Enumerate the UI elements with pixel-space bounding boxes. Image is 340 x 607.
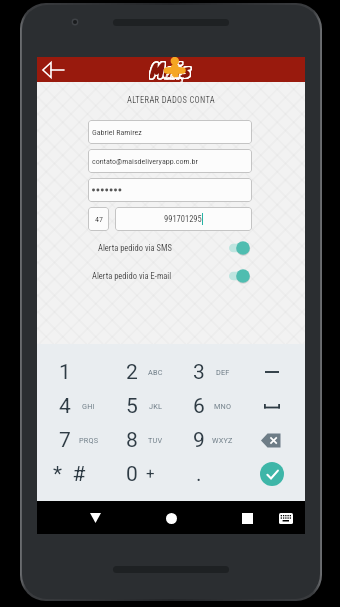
staticText: 0 (126, 462, 138, 487)
button[interactable]: 9 (171, 423, 238, 457)
button[interactable]: 5 (104, 389, 171, 423)
staticText: Mais (150, 57, 192, 79)
staticText: 991701295 (164, 214, 202, 224)
staticText: contato@maisdeliveryapp.com.br (92, 157, 198, 166)
button[interactable]: Traço (238, 355, 305, 389)
staticText: 6 (193, 394, 205, 419)
staticText: GHI (82, 402, 95, 411)
staticText: 4 (59, 394, 71, 419)
staticText: Mais (149, 57, 191, 79)
staticText: 5 (126, 394, 138, 419)
staticText: * # (53, 462, 86, 487)
staticText: Mais (150, 57, 192, 78)
staticText: Mais (150, 57, 192, 80)
staticText: 3 (193, 360, 205, 385)
button[interactable]: 6 (171, 389, 238, 423)
button[interactable]: * # (37, 457, 104, 491)
staticText: Alerta pedido via SMS (98, 243, 172, 253)
button[interactable]: contato@maisdeliveryapp.com.br (88, 149, 252, 173)
staticText: ABC (148, 368, 163, 377)
staticText: DEF (216, 368, 230, 377)
button[interactable]: Apagar (238, 423, 305, 457)
button[interactable]: Ocultar teclado (273, 502, 299, 534)
staticText: . (196, 462, 202, 487)
button[interactable]: Espaço (238, 389, 305, 423)
button[interactable]: 8 (104, 423, 171, 457)
staticText: PRQS (79, 436, 99, 445)
staticText: Mais (151, 57, 193, 80)
staticText: Mais (149, 57, 191, 80)
staticText: 8 (126, 428, 138, 453)
button[interactable]: Recentes (215, 502, 280, 534)
staticText: 47 (95, 215, 103, 224)
staticText: Mais (151, 57, 193, 80)
button[interactable]: Confirmar (260, 462, 284, 486)
button[interactable]: Alerta pedido via E-mail (37, 267, 305, 285)
staticText: Mais (150, 57, 192, 80)
button[interactable]: 991701295 (115, 207, 252, 231)
button[interactable]: 4 (37, 389, 104, 423)
button[interactable]: 7 (37, 423, 104, 457)
other: Espaço (264, 400, 280, 412)
staticText: JKL (149, 402, 163, 411)
staticText: + (146, 465, 155, 483)
button[interactable]: 1 (37, 355, 104, 389)
staticText: 2 (126, 360, 138, 385)
staticText: 9 (193, 428, 205, 453)
staticText: Gabriel Ramirez (92, 128, 142, 137)
staticText: 7 (59, 428, 71, 453)
button[interactable]: 47 (88, 207, 109, 231)
button[interactable]: . (171, 457, 238, 491)
staticText: Alerta pedido via E-mail (92, 271, 172, 281)
button[interactable]: Confirmar (238, 457, 305, 491)
staticText: Mais (149, 57, 191, 80)
staticText: delivery (164, 72, 184, 83)
button[interactable]: Gabriel Ramirez (88, 120, 252, 144)
other: Apagar (261, 433, 282, 448)
staticText: 1 (59, 360, 71, 385)
staticText: MNO (214, 402, 232, 411)
button[interactable]: Início (139, 502, 204, 534)
staticText: Mais (149, 57, 191, 78)
button[interactable]: 0 (104, 457, 171, 491)
staticText: Mais (150, 57, 192, 78)
staticText: Mais (151, 57, 193, 78)
staticText: TUV (148, 436, 163, 445)
button[interactable]: 2 (104, 355, 171, 389)
staticText: WXYZ (212, 436, 233, 445)
staticText: Mais (151, 57, 193, 78)
other: Traço (265, 366, 279, 378)
button[interactable]: 3 (171, 355, 238, 389)
button[interactable]: Voltar (63, 502, 128, 534)
staticText: ALTERAR DADOS CONTA (37, 95, 305, 105)
staticText: Mais (151, 57, 193, 79)
button[interactable] (88, 178, 252, 202)
staticText: Mais (149, 57, 191, 78)
button[interactable]: Alerta pedido via SMS (37, 239, 305, 257)
button[interactable]: Voltar (42, 57, 70, 82)
